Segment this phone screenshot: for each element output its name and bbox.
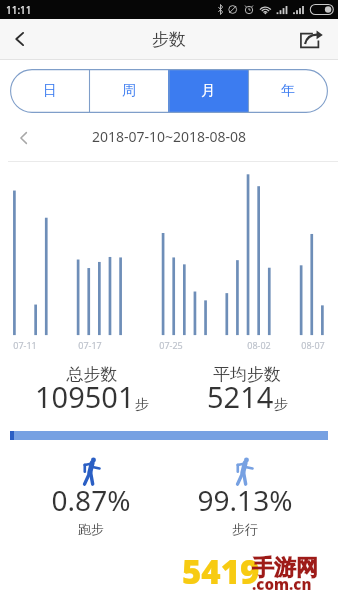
button[interactable]: Share [298,19,338,59]
button[interactable]: 日 [10,69,89,113]
staticText: 手游网 [252,554,318,582]
staticText: 平均步数 [167,364,327,385]
staticText: 109501 [35,377,135,416]
button[interactable]: Previous range [6,124,40,152]
staticText: 07-25 [146,339,196,351]
staticText: .com.cn [252,574,312,594]
staticText: 步 [135,396,149,414]
button[interactable]: 周 [89,69,168,113]
staticText: 08-07 [288,339,338,351]
staticText: 日 [43,82,57,100]
staticText: 07-17 [65,339,115,351]
staticText: 0.87% [11,481,171,519]
staticText: 跑步 [11,521,171,537]
staticText: 年 [281,82,295,100]
staticText: 99.13% [165,481,325,519]
button[interactable]: 年 [248,69,328,113]
staticText: 08-02 [234,339,284,351]
staticText: 月 [201,82,215,100]
staticText: 步 [274,396,288,414]
staticText: 步行 [165,521,325,537]
button[interactable]: Back [0,19,38,59]
staticText: 步数 [152,29,186,50]
staticText: 07-11 [0,339,50,351]
staticText: 周 [122,82,136,100]
staticText: 2018-07-10~2018-08-08 [0,127,338,146]
staticText: 5214 [207,377,274,416]
button[interactable]: 月 [168,69,248,113]
staticText: 11:11 [6,3,32,17]
staticText: 总步数 [12,364,172,385]
staticText: 5419 [182,549,260,594]
